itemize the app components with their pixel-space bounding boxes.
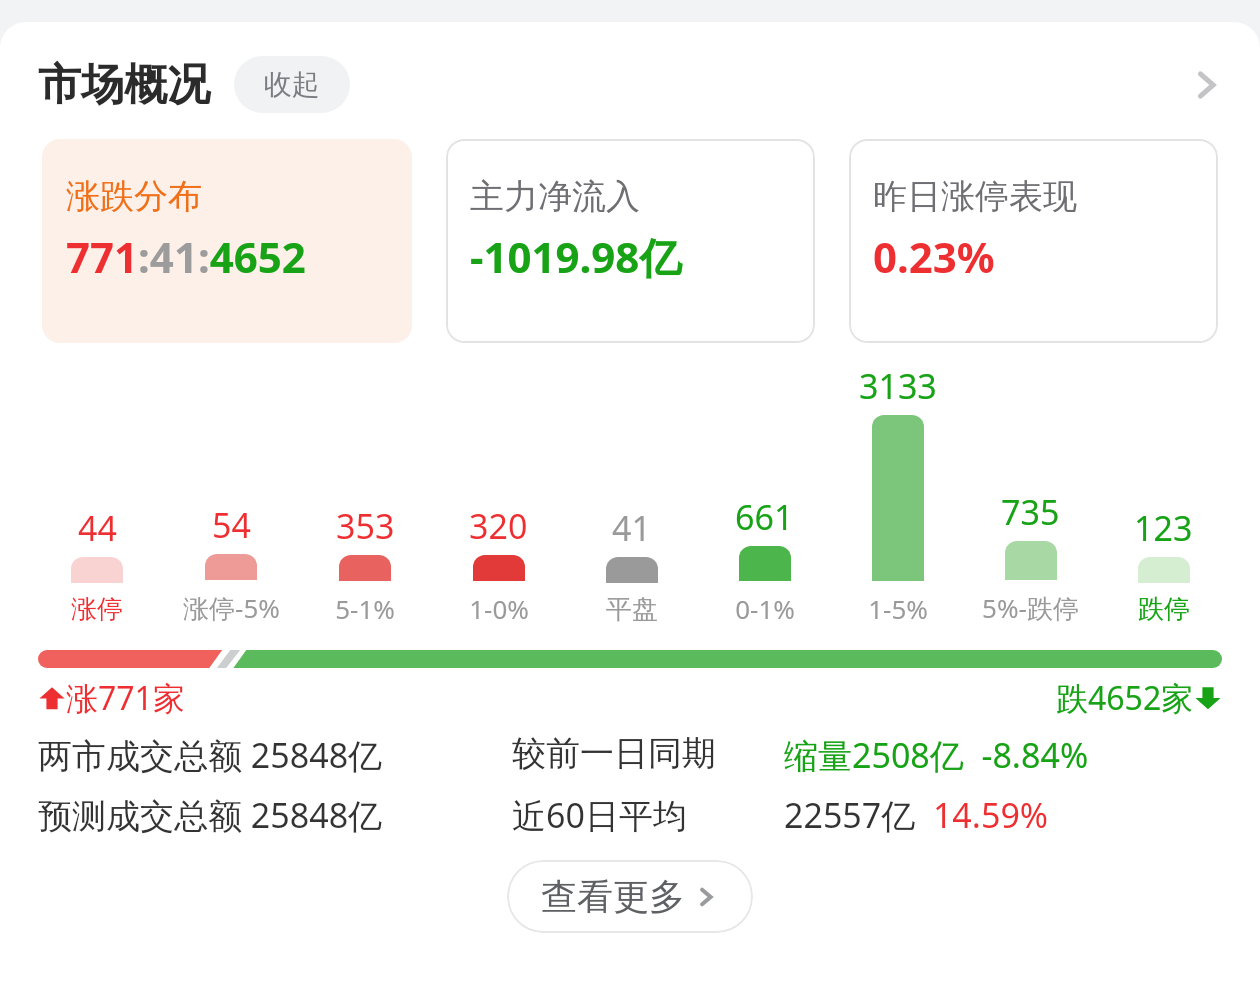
staticText: 0.23% (873, 228, 995, 285)
staticText: 涨停 (71, 593, 123, 626)
staticText: 涨停-5% (183, 590, 280, 626)
staticText: 涨771家 (66, 676, 185, 720)
button[interactable]: 涨跌分布 (42, 139, 412, 343)
staticText: 0-1% (735, 591, 795, 626)
staticText: 123 (1134, 505, 1193, 551)
staticText: 市场概况 (38, 58, 210, 112)
button[interactable]: 查看更多 (507, 860, 753, 933)
button[interactable]: 收起 (234, 56, 350, 113)
staticText: 54 (212, 502, 251, 548)
staticText: 3133 (859, 363, 937, 409)
staticText: 跌停 (1138, 593, 1190, 626)
staticText: 5%-跌停 (982, 590, 1079, 626)
staticText: -1019.98亿 (470, 228, 682, 285)
staticText: 昨日涨停表现 (873, 175, 1077, 218)
staticText: 主力净流入 (470, 175, 640, 218)
staticText: 661 (735, 494, 794, 540)
button[interactable]: 昨日涨停表现 (849, 139, 1218, 343)
staticText: 1-5% (868, 591, 928, 626)
staticText: 跌4652家 (1056, 676, 1194, 720)
staticText: 预测成交总额 25848亿 (38, 792, 512, 838)
staticText: 收起 (264, 67, 320, 102)
staticText: 41 (612, 505, 651, 551)
staticText: 5-1% (335, 591, 395, 626)
staticText: 1-0% (469, 591, 529, 626)
button[interactable]: 更多 (1178, 57, 1234, 113)
staticText: 缩量2508亿 -8.84% (784, 732, 1222, 778)
staticText: 较前一日同期 (512, 732, 784, 775)
staticText: 771:41:4652 (66, 228, 306, 285)
staticText: 44 (78, 505, 117, 551)
staticText: 320 (469, 503, 528, 549)
button[interactable]: 主力净流入 (446, 139, 815, 343)
staticText: 353 (336, 503, 395, 549)
staticText: 近60日平均 (512, 792, 784, 838)
staticText: 平盘 (606, 593, 658, 626)
staticText: 22557亿 14.59% (784, 792, 1222, 838)
staticText: 查看更多 (541, 874, 685, 919)
staticText: 涨跌分布 (66, 175, 202, 218)
staticText: 两市成交总额 25848亿 (38, 732, 512, 778)
staticText: 735 (1001, 489, 1060, 535)
